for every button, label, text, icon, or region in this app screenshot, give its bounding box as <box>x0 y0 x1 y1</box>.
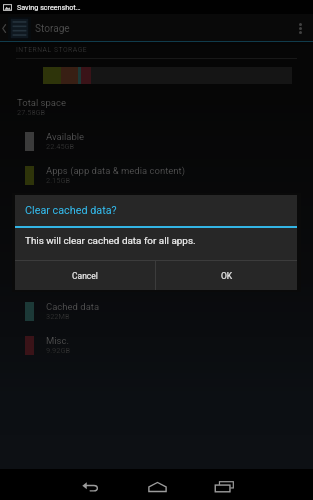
staticText: 22.45GB <box>46 142 75 151</box>
staticText: Cached data <box>46 301 100 312</box>
button[interactable]: Misc. <box>0 328 313 362</box>
staticText: Audio (music, ringtones, podcasts, etc.) <box>46 233 213 244</box>
button[interactable]: Cached data <box>0 294 313 328</box>
staticText: Total space <box>17 97 66 108</box>
staticText: Cancel <box>72 271 98 281</box>
button[interactable]: Downloads <box>0 260 313 294</box>
staticText: 2.15GB <box>46 176 71 185</box>
button[interactable]: Total space <box>0 90 313 124</box>
button[interactable]: Pictures, videos <box>0 192 313 226</box>
staticText: Saving screenshot… <box>17 3 81 11</box>
staticText: 322MB <box>46 312 70 321</box>
staticText: 48.50MB <box>46 278 76 287</box>
staticText: Clear cached data? <box>25 204 117 217</box>
staticText: INTERNAL STORAGE <box>16 46 88 54</box>
button[interactable]: OK <box>156 261 297 290</box>
button[interactable]: Recent apps <box>201 472 247 500</box>
button[interactable]: Audio (music, ringtones, podcasts, etc.) <box>0 226 313 260</box>
button[interactable]: Available <box>0 124 313 158</box>
staticText: OK <box>221 271 233 281</box>
staticText: Pictures, videos <box>46 199 113 210</box>
staticText: 9.92GB <box>46 346 71 355</box>
staticText: 1.20GB <box>46 210 71 219</box>
staticText: Storage <box>35 23 70 35</box>
button[interactable]: More options <box>287 15 313 42</box>
staticText: Apps (app data & media content) <box>46 165 185 176</box>
staticText: 27.58GB <box>17 108 46 117</box>
staticText: Misc. <box>46 335 69 346</box>
staticText: Downloads <box>46 267 94 278</box>
button[interactable]: Home <box>134 472 180 500</box>
button[interactable]: Back <box>67 472 113 500</box>
button[interactable]: Navigate up <box>0 15 33 42</box>
staticText: This will clear cached data for all apps… <box>25 235 196 247</box>
button[interactable]: Cancel <box>15 261 155 290</box>
staticText: Available <box>46 131 85 142</box>
button[interactable]: Apps (app data & media content) <box>0 158 313 192</box>
